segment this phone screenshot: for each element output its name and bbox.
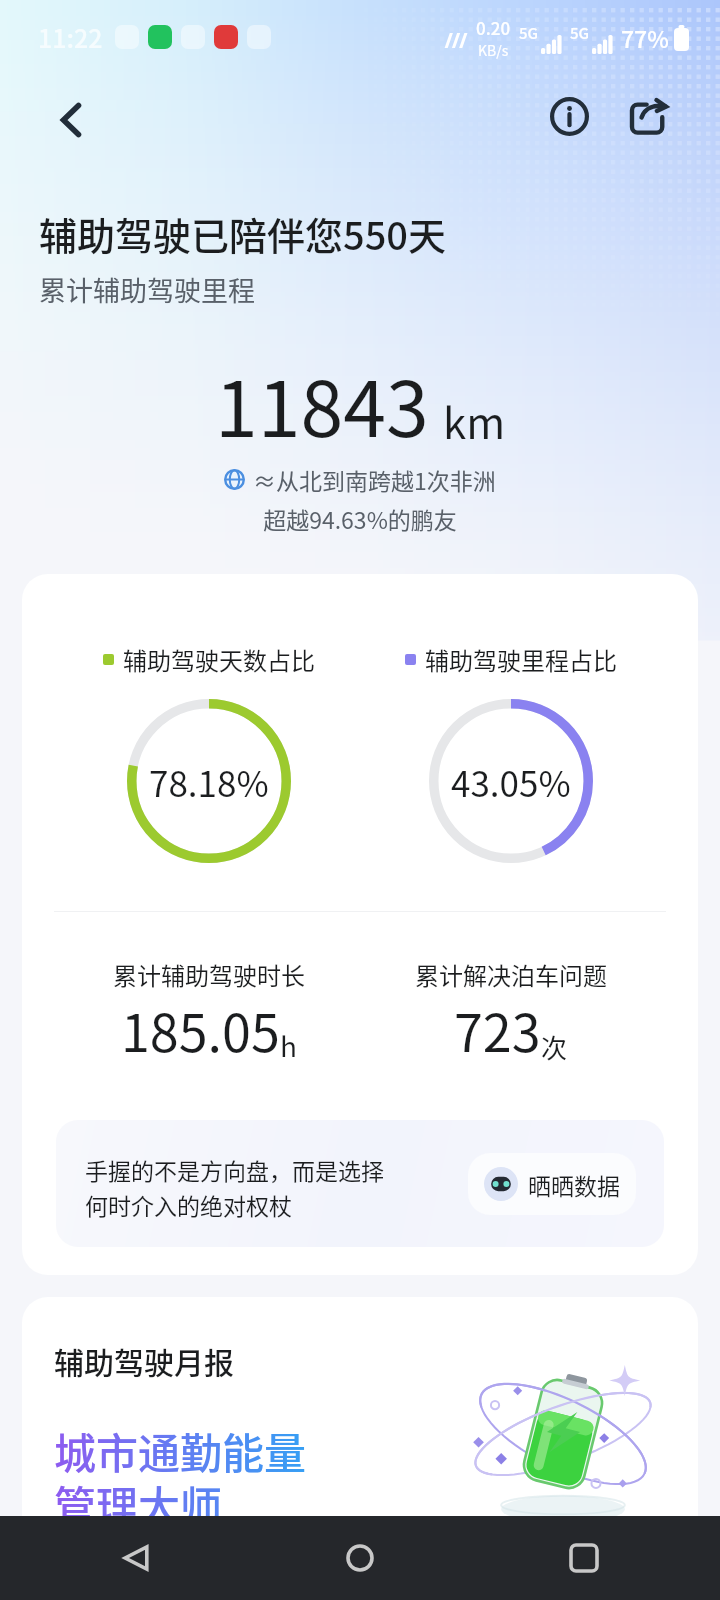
staticText: 723 [454, 992, 541, 1067]
button[interactable]: 晒晒数据 [468, 1153, 636, 1215]
staticText: ≈从北到南跨越1次非洲 [253, 463, 496, 496]
staticText: km [443, 390, 506, 451]
staticText: KB/s [478, 40, 509, 60]
staticText: 辅助驾驶月报 [54, 1339, 234, 1382]
staticText: 5G [519, 22, 539, 44]
staticText: 辅助驾驶天数占比 [123, 642, 315, 677]
staticText: 何时介入的绝对权杖 [85, 1188, 292, 1221]
staticText: 城市通勤能量 [54, 1420, 307, 1481]
staticText: 次 [541, 1028, 568, 1066]
staticText: 0.20 [476, 15, 511, 40]
staticText: 手握的不是方向盘，而是选择 [85, 1153, 384, 1186]
staticText: 78.18% [149, 756, 269, 807]
staticText: 累计辅助驾驶时长 [113, 957, 305, 992]
button[interactable]: Back [38, 92, 104, 148]
staticText: 累计解决泊车问题 [415, 957, 607, 992]
staticText: 累计辅助驾驶里程 [39, 270, 255, 309]
staticText: 11843 [215, 348, 429, 459]
button[interactable]: Back [100, 1522, 172, 1594]
staticText: 185.05 [121, 992, 280, 1067]
button[interactable]: Recents [548, 1522, 620, 1594]
button[interactable]: Info [543, 90, 595, 142]
staticText: 超越94.63%的鹏友 [0, 502, 720, 535]
staticText: 管理大师 [54, 1473, 223, 1534]
staticText: 晒晒数据 [528, 1168, 620, 1201]
button[interactable]: Home [324, 1522, 396, 1594]
staticText: 5G [570, 22, 590, 44]
staticText: h [280, 1025, 297, 1066]
button[interactable]: Share [623, 90, 675, 142]
staticText: 辅助驾驶里程占比 [425, 642, 617, 677]
staticText: 11:22 [38, 19, 103, 55]
staticText: 77% [621, 21, 669, 54]
staticText: 43.05% [451, 756, 571, 807]
staticText: 辅助驾驶已陪伴您550天 [39, 206, 446, 261]
